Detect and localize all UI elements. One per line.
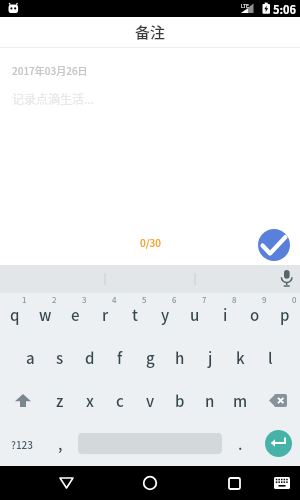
staticText: 2017年03月26日 xyxy=(12,63,88,77)
staticText: b xyxy=(175,390,185,412)
button[interactable] xyxy=(272,473,292,493)
staticText: i xyxy=(223,304,228,326)
button[interactable]: p xyxy=(270,293,300,336)
button[interactable]: y xyxy=(150,293,180,336)
button[interactable] xyxy=(258,229,290,261)
staticText: 1 xyxy=(22,294,27,306)
button[interactable]: h xyxy=(165,336,195,379)
staticText: LTE xyxy=(241,2,249,9)
button[interactable]: q xyxy=(0,293,30,336)
staticText: 2 xyxy=(52,294,57,306)
button[interactable]: r xyxy=(90,293,120,336)
staticText: g xyxy=(146,347,155,369)
staticText: 6 xyxy=(172,294,177,306)
staticText: k xyxy=(236,347,245,369)
staticText: ?123 xyxy=(11,437,34,451)
staticText: p xyxy=(280,304,290,326)
button[interactable] xyxy=(136,469,164,497)
staticText: w xyxy=(39,304,52,326)
staticText: m xyxy=(233,390,248,412)
button[interactable]: ?123 xyxy=(0,422,45,465)
staticText: q xyxy=(10,304,20,326)
staticText: , xyxy=(58,433,63,455)
button[interactable]: l xyxy=(255,336,285,379)
button[interactable]: a xyxy=(15,336,45,379)
button[interactable]: v xyxy=(135,379,165,422)
staticText: 记录点滴生活... xyxy=(12,90,95,107)
button[interactable]: s xyxy=(45,336,75,379)
button[interactable]: , xyxy=(45,422,75,465)
button[interactable]: n xyxy=(195,379,225,422)
staticText: x xyxy=(86,390,94,412)
staticText: 8 xyxy=(232,294,237,306)
staticText: c xyxy=(116,390,124,412)
button[interactable] xyxy=(255,379,300,422)
staticText: f xyxy=(117,347,123,369)
button[interactable]: b xyxy=(165,379,195,422)
staticText: y xyxy=(161,304,170,326)
button[interactable]: z xyxy=(45,379,75,422)
staticText: z xyxy=(56,390,64,412)
button[interactable]: j xyxy=(195,336,225,379)
button[interactable] xyxy=(255,422,300,465)
staticText: n xyxy=(205,390,215,412)
staticText: d xyxy=(85,347,95,369)
button[interactable]: f xyxy=(105,336,135,379)
button[interactable]: u xyxy=(180,293,210,336)
button[interactable]: t xyxy=(120,293,150,336)
staticText: j xyxy=(208,347,213,369)
button[interactable]: c xyxy=(105,379,135,422)
button[interactable]: . xyxy=(225,422,255,465)
staticText: . xyxy=(238,433,243,455)
button[interactable]: w xyxy=(30,293,60,336)
staticText: 7 xyxy=(202,294,207,306)
button[interactable]: k xyxy=(225,336,255,379)
staticText: 3 xyxy=(82,294,87,306)
button[interactable] xyxy=(52,469,80,497)
staticText: 0/30 xyxy=(140,235,161,249)
staticText: 9 xyxy=(262,294,267,306)
staticText: h xyxy=(175,347,185,369)
button[interactable]: o xyxy=(240,293,270,336)
button[interactable]: e xyxy=(60,293,90,336)
staticText: r xyxy=(102,304,109,326)
button[interactable]: d xyxy=(75,336,105,379)
staticText: 5 xyxy=(142,294,147,306)
staticText: 0 xyxy=(292,294,297,306)
button[interactable]: g xyxy=(135,336,165,379)
staticText: l xyxy=(268,347,273,369)
button[interactable] xyxy=(0,379,45,422)
staticText: u xyxy=(190,304,200,326)
staticText: 4 xyxy=(112,294,117,306)
staticText: e xyxy=(71,304,80,326)
staticText: t xyxy=(132,304,138,326)
staticText: o xyxy=(250,304,260,326)
staticText: v xyxy=(146,390,155,412)
button[interactable]: i xyxy=(210,293,240,336)
button[interactable]: m xyxy=(225,379,255,422)
button[interactable]: x xyxy=(75,379,105,422)
staticText: 备注 xyxy=(135,21,166,43)
staticText: s xyxy=(56,347,64,369)
staticText: 5:06 xyxy=(273,1,297,17)
button[interactable] xyxy=(220,469,248,497)
staticText: a xyxy=(26,347,35,369)
